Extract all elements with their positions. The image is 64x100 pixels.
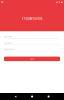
button[interactable]: Back (14, 95, 16, 97)
staticText: Select Course (4, 48, 15, 50)
staticText: Username (4, 36, 12, 38)
button[interactable]: LOGIN (4, 57, 60, 61)
staticText: Password (4, 42, 12, 44)
button[interactable]: Home (31, 95, 33, 98)
staticText: STUDENT LOGIN (21, 17, 42, 21)
staticText: LOGIN (29, 58, 34, 60)
button[interactable]: Recent apps (48, 96, 49, 97)
